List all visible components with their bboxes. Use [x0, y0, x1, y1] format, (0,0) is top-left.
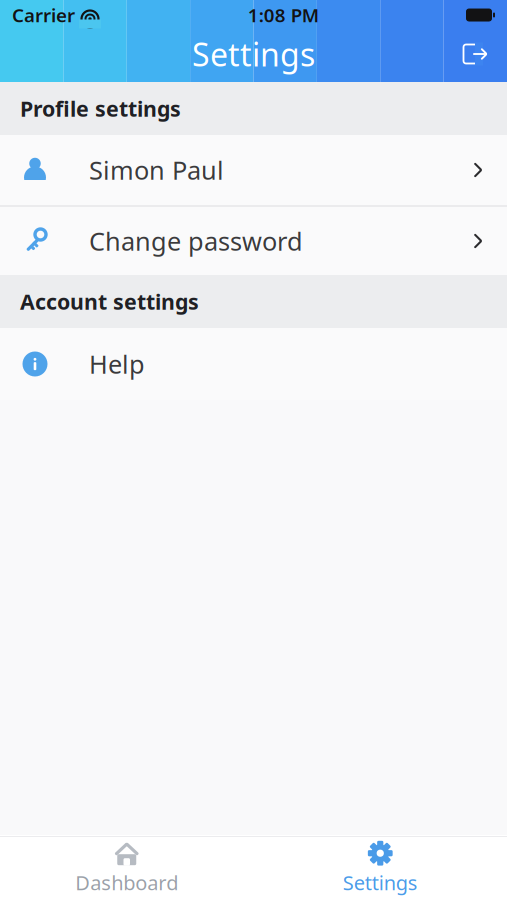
- button[interactable]: Log out: [453, 33, 499, 75]
- staticText: Change password: [89, 224, 303, 258]
- staticText: Carrier: [12, 3, 75, 27]
- staticText: 1:08 PM: [248, 3, 319, 27]
- staticText: Account settings: [20, 287, 199, 316]
- button[interactable]: Dashboard: [0, 838, 253, 898]
- button[interactable]: Settings: [253, 838, 507, 898]
- button[interactable]: Simon Paul: [0, 135, 507, 205]
- staticText: Settings: [343, 869, 418, 896]
- button[interactable]: Change password: [0, 207, 507, 275]
- staticText: Settings: [192, 33, 315, 75]
- staticText: Simon Paul: [89, 153, 224, 187]
- staticText: Profile settings: [20, 94, 181, 123]
- button[interactable]: Help: [0, 328, 507, 400]
- staticText: Help: [89, 347, 145, 381]
- staticText: Dashboard: [75, 869, 178, 896]
